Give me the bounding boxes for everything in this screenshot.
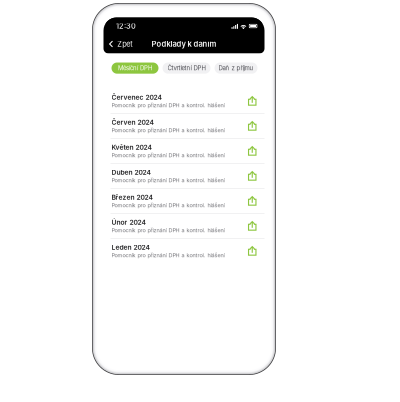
staticText: Daň z příjmu — [218, 64, 253, 72]
staticText: Únor 2024 — [111, 218, 145, 226]
staticText: Pomocník pro přiznání DPH a kontrol. hlá… — [111, 152, 224, 158]
staticText: Leden 2024 — [111, 243, 149, 251]
button[interactable]: Leden 2024 — [103, 239, 264, 263]
staticText: Podklady k daním — [151, 39, 216, 49]
button[interactable]: Čtvrtletní DPH — [162, 62, 210, 74]
staticText: Březen 2024 — [111, 193, 152, 201]
staticText: Zpět — [117, 40, 132, 48]
staticText: Pomocník pro přiznání DPH a kontrol. hlá… — [111, 127, 224, 133]
staticText: Duben 2024 — [111, 168, 150, 176]
button[interactable]: Červen 2024 — [103, 114, 264, 138]
staticText: Pomocník pro přiznání DPH a kontrol. hlá… — [111, 202, 224, 208]
staticText: Měsíční DPH — [118, 64, 152, 72]
staticText: Pomocník pro přiznání DPH a kontrol. hlá… — [111, 102, 224, 108]
staticText: Pomocník pro přiznání DPH a kontrol. hlá… — [111, 227, 224, 233]
button[interactable]: Březen 2024 — [103, 189, 264, 213]
staticText: Červenec 2024 — [111, 93, 161, 101]
staticText: Pomocník pro přiznání DPH a kontrol. hlá… — [111, 177, 224, 183]
button[interactable]: Zpět — [103, 37, 136, 51]
button[interactable]: Červenec 2024 — [103, 89, 264, 113]
button[interactable]: Daň z příjmu — [214, 62, 257, 74]
button[interactable]: Únor 2024 — [103, 214, 264, 238]
button[interactable]: Měsíční DPH — [111, 62, 158, 74]
staticText: 12:30 — [116, 22, 136, 30]
staticText: Červen 2024 — [111, 118, 153, 126]
staticText: Pomocník pro přiznání DPH a kontrol. hlá… — [111, 252, 224, 258]
button[interactable]: Duben 2024 — [103, 164, 264, 188]
button[interactable]: Květen 2024 — [103, 139, 264, 163]
staticText: Čtvrtletní DPH — [167, 64, 205, 72]
staticText: Květen 2024 — [111, 143, 151, 151]
